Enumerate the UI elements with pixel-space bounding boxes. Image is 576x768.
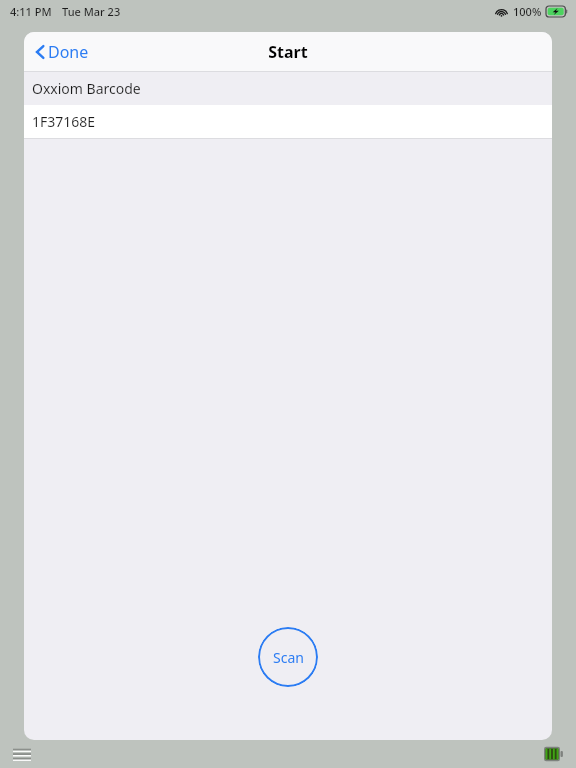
staticText: Oxxiom Barcode [32, 79, 141, 98]
button[interactable]: 1F37168E [24, 105, 552, 138]
staticText: 100% [513, 4, 542, 19]
button[interactable]: Scan [258, 627, 318, 687]
staticText: 4:11 PM [10, 4, 52, 19]
staticText: Start [268, 41, 308, 63]
staticText: Done [48, 41, 89, 63]
staticText: 1F37168E [32, 112, 96, 131]
button[interactable]: Battery status [538, 741, 570, 767]
staticText: Tue Mar 23 [62, 4, 121, 19]
button[interactable]: Done [24, 35, 101, 69]
button[interactable]: Menu [6, 742, 38, 766]
staticText: Scan [273, 648, 304, 667]
